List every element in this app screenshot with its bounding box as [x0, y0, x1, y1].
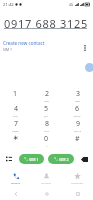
button[interactable]: SIM 1 [3, 47, 12, 52]
button[interactable]: Contacts [31, 171, 62, 186]
staticText: Contacts [41, 181, 52, 184]
staticText: 5 [44, 104, 49, 114]
staticText: Create new contact [3, 40, 45, 46]
staticText: SIM 1 [29, 157, 39, 162]
staticText: ABC [44, 99, 50, 102]
staticText: 0917 688 3125 [4, 16, 89, 31]
button[interactable]: 2 [31, 89, 62, 104]
staticText: WXYZ [74, 129, 82, 132]
button[interactable]: 8 [31, 119, 62, 134]
staticText: 1 [13, 89, 18, 99]
button[interactable]: 6 [62, 104, 93, 119]
staticText: Recents [11, 181, 21, 184]
button[interactable]: SIM 1 [19, 154, 44, 164]
staticText: 4G [69, 3, 74, 7]
button[interactable]: ∗ [0, 134, 31, 149]
staticText: 21:42 [3, 2, 14, 8]
staticText: JKL [44, 114, 49, 117]
button[interactable]: Back [0, 187, 31, 200]
button[interactable]: Recent apps [62, 187, 93, 200]
staticText: SIM 1 [3, 47, 12, 52]
staticText: + [46, 144, 48, 147]
staticText: Favourites [71, 181, 84, 184]
button[interactable]: Favourites [62, 171, 93, 186]
staticText: # [75, 134, 80, 144]
staticText: 4 [14, 104, 19, 114]
staticText: 6 [75, 104, 80, 114]
staticText: TUV [44, 129, 50, 132]
staticText: 9 [76, 119, 81, 129]
staticText: 3 [76, 89, 81, 99]
button[interactable]: 7 [0, 119, 31, 134]
button[interactable]: 0 [31, 134, 62, 149]
button[interactable]: Backspace [76, 150, 93, 168]
button[interactable]: 1 [0, 89, 31, 104]
staticText: DEF [75, 99, 81, 102]
staticText: ∗ [13, 134, 19, 142]
staticText: GHI [13, 114, 19, 117]
button[interactable]: SIM 2 [48, 154, 74, 164]
button[interactable]: 9 [62, 119, 93, 134]
staticText: MNO [74, 114, 81, 117]
staticText: 2 [45, 89, 50, 99]
button[interactable]: More options [79, 42, 91, 54]
button[interactable]: Call log [0, 150, 17, 168]
button[interactable]: 4 [0, 104, 31, 119]
button[interactable]: # [62, 134, 93, 149]
button[interactable]: Create new contact [3, 40, 45, 46]
staticText: 7 [14, 119, 19, 129]
staticText: 0 [44, 134, 49, 144]
staticText: SIM 2 [59, 157, 69, 162]
staticText: PQRS [12, 129, 20, 132]
button[interactable]: 5 [31, 104, 62, 119]
button[interactable]: 3 [62, 89, 93, 104]
button[interactable]: Recents [0, 171, 31, 186]
staticText: 8 [45, 119, 50, 129]
button[interactable]: Home [31, 187, 62, 200]
